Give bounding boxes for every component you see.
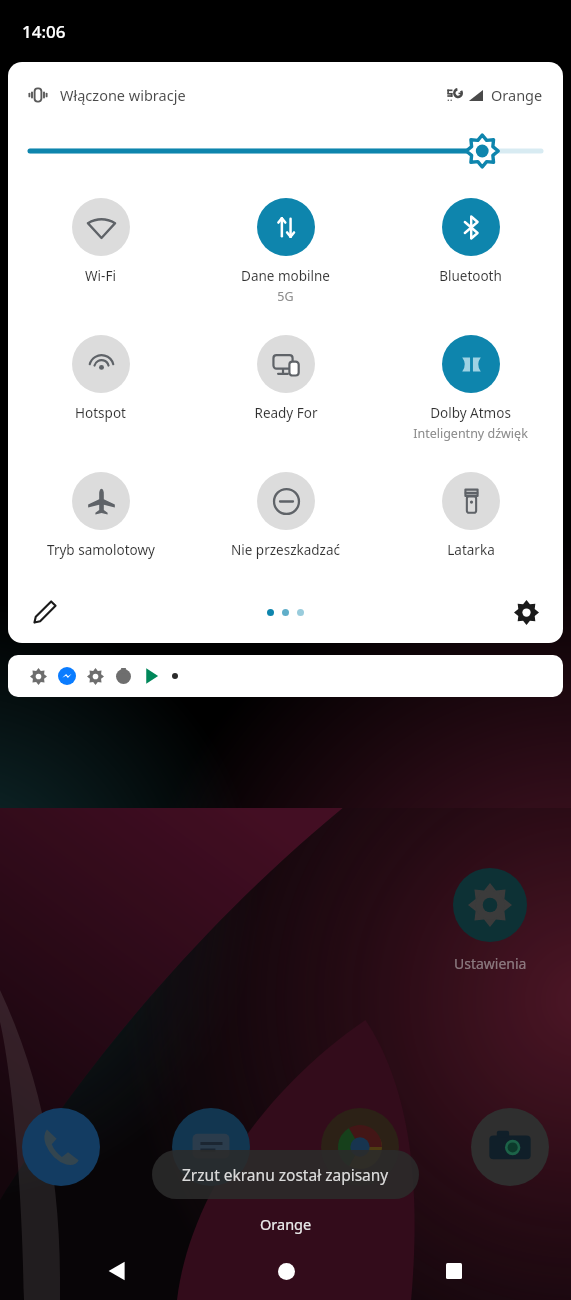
button[interactable]: Nie przeszkadzać — [193, 470, 378, 561]
staticText: Bluetooth — [439, 267, 502, 285]
button[interactable] — [321, 1108, 399, 1186]
staticText: Nie przeszkadzać — [231, 541, 340, 559]
staticText: Ready For — [254, 404, 318, 422]
button[interactable] — [471, 1108, 549, 1186]
staticText: Tryb samolotowy — [47, 541, 155, 559]
staticText: Inteligentny dźwięk — [413, 425, 528, 442]
staticText: Zrzut ekranu został zapisany — [182, 1164, 389, 1185]
button[interactable]: Tryb samolotowy — [8, 470, 193, 561]
staticText: Wi-Fi — [85, 267, 116, 285]
button[interactable] — [22, 1108, 100, 1186]
staticText: Dolby Atmos — [430, 404, 511, 422]
button[interactable]: Wi-Fi — [8, 196, 193, 287]
staticText: Hotspot — [75, 404, 126, 422]
button[interactable]: Hotspot — [8, 333, 193, 424]
staticText: Orange — [491, 85, 543, 105]
button[interactable]: Edit tiles — [24, 591, 66, 633]
staticText: Latarka — [447, 541, 495, 559]
button[interactable]: Recents — [433, 1250, 475, 1292]
button[interactable] — [172, 1108, 250, 1186]
button[interactable]: Back — [96, 1250, 138, 1292]
staticText: 5G — [277, 288, 294, 305]
staticText: Włączone wibracje — [60, 85, 186, 105]
staticText: Ustawienia — [454, 954, 527, 973]
staticText: Dane mobilne — [241, 267, 330, 285]
button[interactable]: Dolby Atmos — [378, 333, 563, 444]
button[interactable]: Bluetooth — [378, 196, 563, 287]
staticText: Orange — [260, 1214, 312, 1234]
button[interactable]: Dane mobilne — [193, 196, 378, 307]
button[interactable]: Latarka — [378, 470, 563, 561]
button[interactable]: Ustawienia — [440, 868, 540, 973]
button[interactable] — [8, 655, 563, 697]
button[interactable]: Settings — [505, 591, 547, 633]
button[interactable]: Ready For — [193, 333, 378, 424]
button[interactable]: Home — [265, 1250, 307, 1292]
staticText: 14:06 — [22, 20, 66, 43]
